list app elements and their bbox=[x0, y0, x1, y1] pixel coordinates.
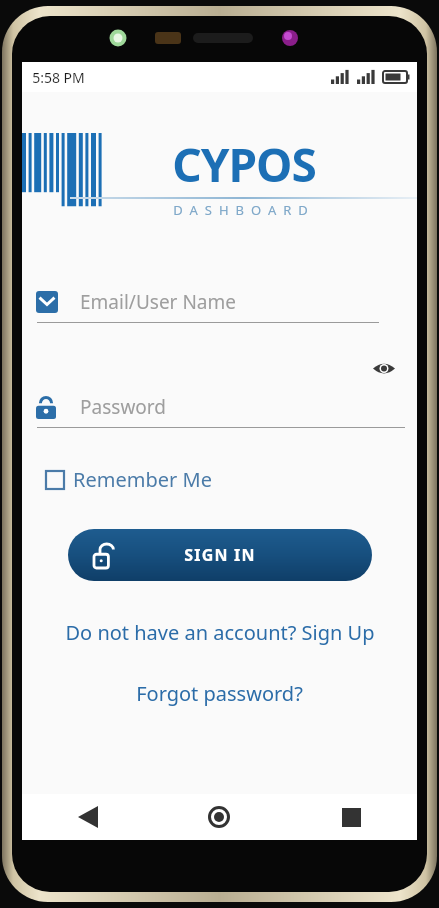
staticText: DASHBOARD bbox=[173, 201, 315, 219]
button[interactable]: Password bbox=[22, 387, 417, 427]
staticText: Remember Me bbox=[73, 466, 212, 493]
button[interactable]: SIGN IN bbox=[68, 529, 372, 581]
staticText: Do not have an account? Sign Up bbox=[65, 619, 375, 646]
button[interactable]: Remember Me bbox=[44, 462, 214, 497]
staticText: Forgot password? bbox=[136, 680, 303, 707]
button[interactable]: Show password bbox=[367, 351, 401, 385]
staticText: 5:58 PM bbox=[32, 68, 85, 87]
staticText: CYPOS bbox=[172, 133, 316, 196]
staticText: Email/User Name bbox=[80, 289, 236, 315]
button[interactable]: Home bbox=[153, 794, 285, 840]
staticText: Password bbox=[80, 394, 166, 420]
button[interactable]: Forgot password? bbox=[128, 676, 311, 711]
button[interactable]: Email/User Name bbox=[22, 282, 417, 322]
button[interactable]: Do not have an account? Sign Up bbox=[57, 615, 383, 650]
button[interactable]: Recent apps bbox=[285, 794, 417, 840]
staticText: SIGN IN bbox=[184, 544, 256, 566]
button[interactable]: Back bbox=[22, 794, 153, 840]
